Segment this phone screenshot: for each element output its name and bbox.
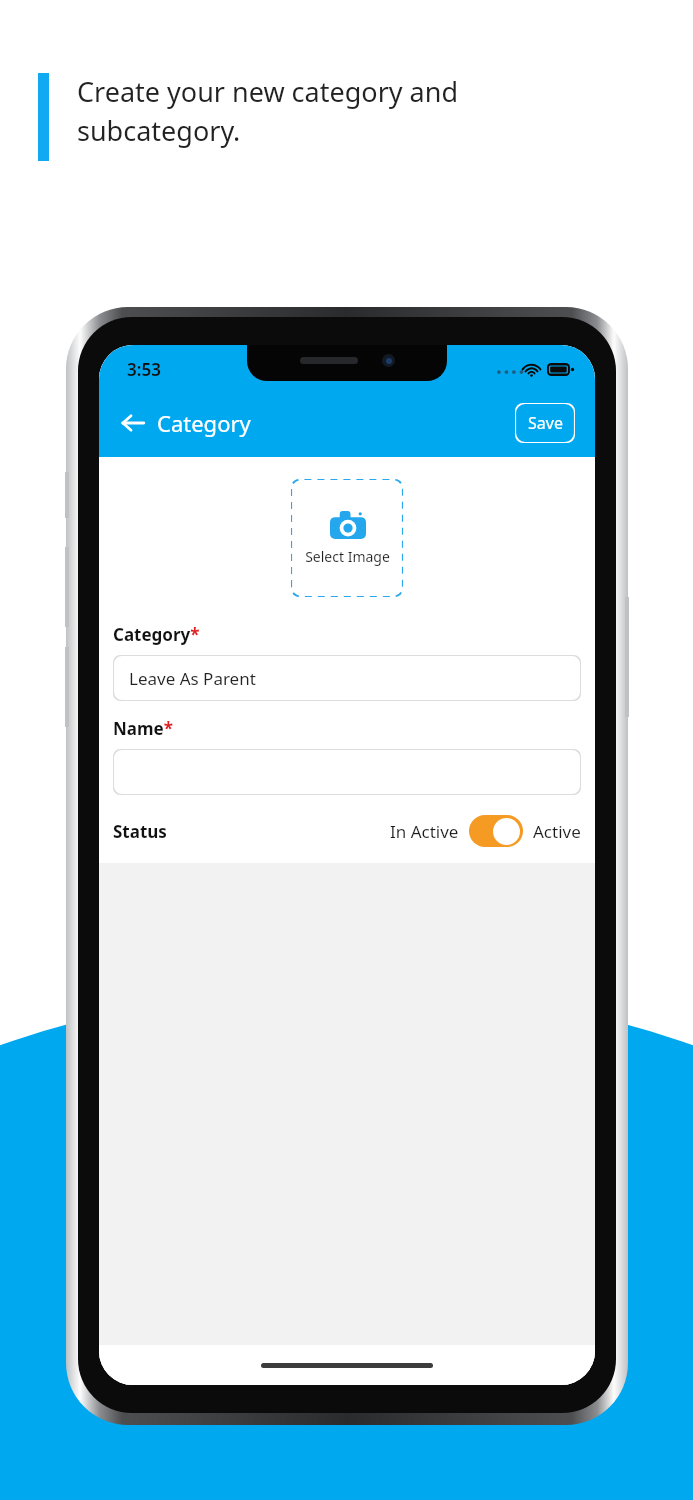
staticText: Active xyxy=(533,820,581,843)
staticText: Category xyxy=(157,408,251,438)
button[interactable]: Back xyxy=(111,400,261,446)
staticText: Name* xyxy=(113,717,173,740)
staticText: Status xyxy=(113,820,167,843)
button[interactable]: Select Image xyxy=(291,479,403,597)
button[interactable]: Leave As Parent xyxy=(113,655,581,701)
button[interactable] xyxy=(113,749,581,795)
button[interactable]: Save xyxy=(515,403,575,443)
staticText: Save xyxy=(528,412,563,434)
staticText: Select Image xyxy=(305,547,390,566)
staticText: 3:53 xyxy=(127,358,161,381)
other: Back xyxy=(121,411,145,435)
button[interactable]: Status toggle xyxy=(469,815,523,847)
staticText: Create your new category and subcategory… xyxy=(77,73,459,149)
staticText: Leave As Parent xyxy=(129,667,256,690)
staticText: Category* xyxy=(113,623,200,646)
staticText: In Active xyxy=(390,820,459,843)
